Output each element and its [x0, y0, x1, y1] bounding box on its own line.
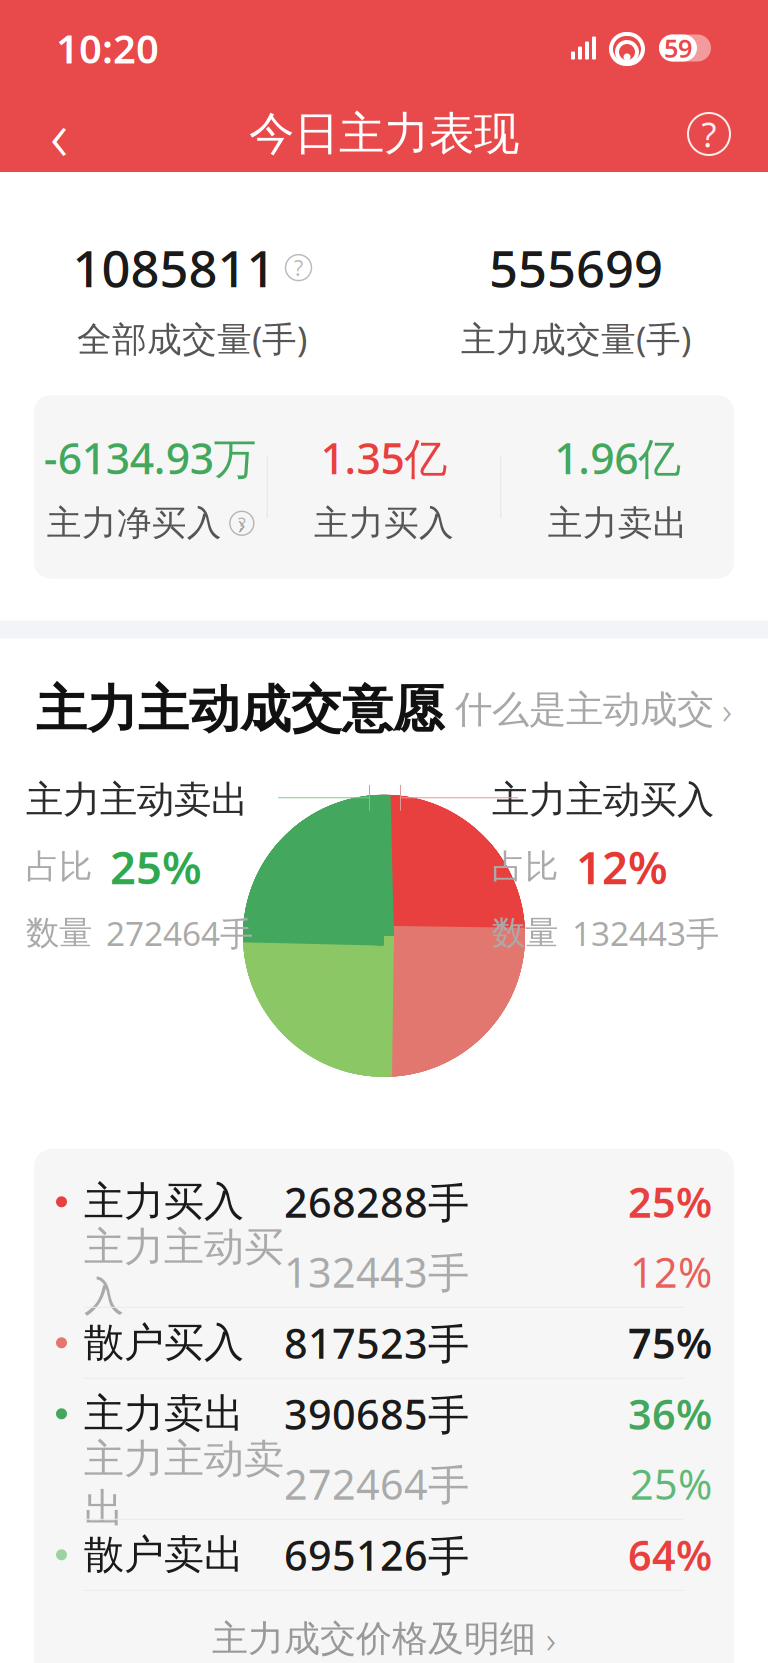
staticText: 主力主动卖出	[84, 1435, 284, 1533]
staticText: ?	[238, 511, 246, 536]
staticText: 占比	[26, 846, 92, 887]
staticText: 555699	[489, 234, 663, 301]
staticText: 1.35亿	[320, 429, 447, 486]
staticText: 64%	[628, 1527, 712, 1582]
staticText: 1.96亿	[554, 429, 681, 486]
button[interactable]: 帮助	[674, 99, 744, 169]
button[interactable]: 什么是主动成交	[455, 685, 732, 734]
staticText: 主力主动买入	[84, 1223, 284, 1321]
staticText: 散户卖出	[84, 1530, 244, 1579]
staticText: 10:20	[56, 21, 159, 74]
staticText: 132443手	[572, 911, 719, 955]
staticText: 今日主力表现	[249, 106, 519, 162]
staticText: ‹	[50, 88, 68, 180]
staticText: 272464手	[106, 911, 253, 955]
staticText: 主力卖出	[84, 1389, 244, 1438]
staticText: 数量	[26, 912, 92, 953]
staticText: 272464手	[284, 1456, 469, 1511]
staticText: 132443手	[284, 1244, 469, 1299]
staticText: 主力卖出	[548, 502, 688, 545]
staticText: -6134.93万	[44, 429, 257, 486]
button[interactable]: -6134.93万	[34, 429, 267, 544]
staticText: 268288手	[284, 1174, 469, 1229]
staticText: 12%	[576, 837, 668, 897]
staticText: 主力成交量(手)	[461, 315, 691, 361]
staticText: 25%	[110, 837, 202, 897]
staticText: 主力主动买入	[492, 777, 714, 823]
staticText: 主力主动卖出	[26, 777, 248, 823]
staticText: 主力主动成交意愿	[36, 679, 444, 741]
staticText: ?	[294, 253, 303, 282]
staticText: 1085811	[72, 234, 275, 301]
staticText: 主力买入	[84, 1177, 244, 1226]
staticText: 主力成交价格及明细	[212, 1617, 536, 1661]
staticText: 75%	[628, 1315, 712, 1370]
staticText: 25%	[630, 1456, 712, 1511]
staticText: 817523手	[284, 1315, 469, 1370]
staticText: 59	[664, 31, 692, 65]
staticText: 占比	[492, 846, 558, 887]
staticText: 全部成交量(手)	[77, 315, 307, 361]
staticText: 25%	[628, 1174, 712, 1229]
staticText: 什么是主动成交	[455, 687, 714, 733]
staticText: ›	[238, 504, 246, 543]
button[interactable]: 返回	[24, 99, 94, 169]
staticText: ›	[546, 1614, 556, 1663]
staticText: 主力净买入	[47, 502, 222, 545]
staticText: 695126手	[284, 1527, 469, 1582]
staticText: 12%	[630, 1244, 712, 1299]
staticText: 散户买入	[84, 1318, 244, 1367]
staticText: 390685手	[284, 1386, 469, 1441]
staticText: ?	[701, 111, 716, 157]
staticText: 主力买入	[314, 502, 454, 545]
staticText: 数量	[492, 912, 558, 953]
staticText: 36%	[628, 1386, 712, 1441]
button[interactable]: 主力成交价格及明细	[56, 1591, 712, 1663]
staticText: ›	[722, 685, 732, 734]
